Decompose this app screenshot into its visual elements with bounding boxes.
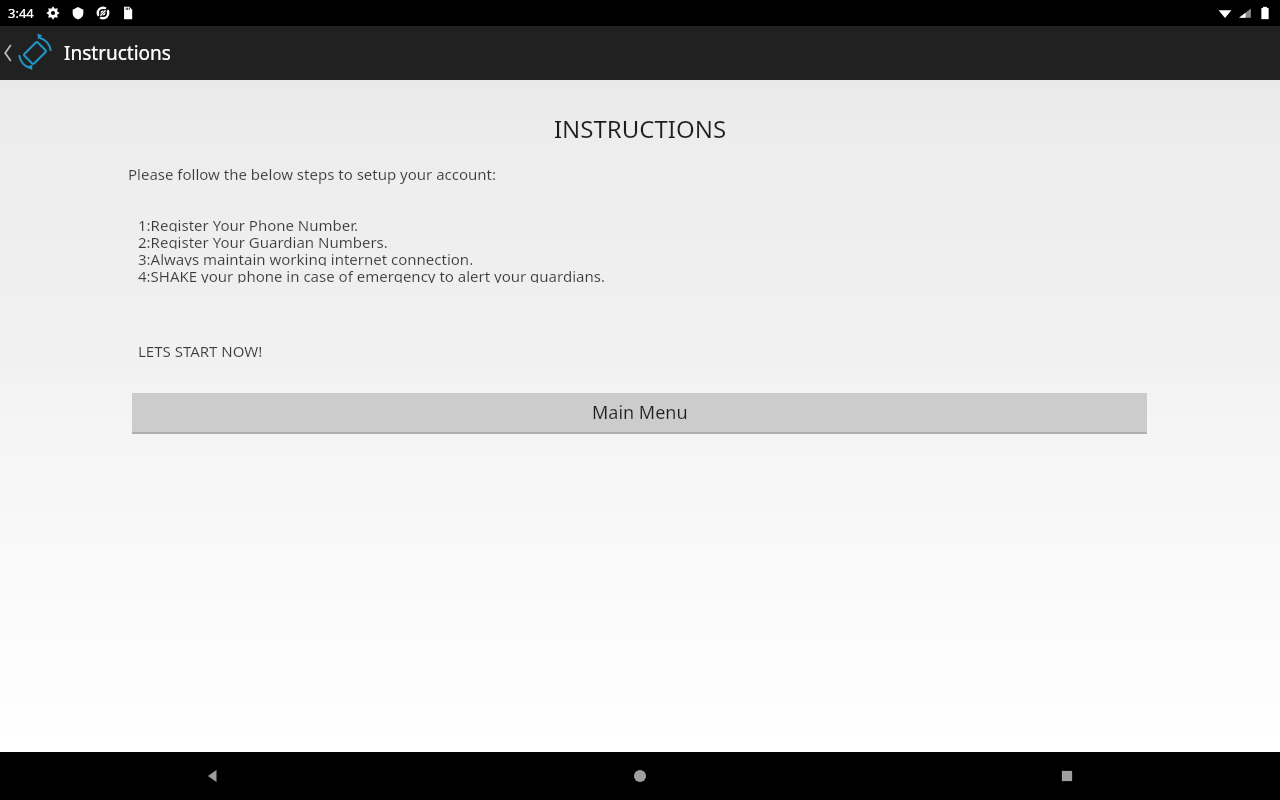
staticText: LETS START NOW! <box>138 341 263 361</box>
button[interactable]: Navigate up <box>0 26 16 80</box>
staticText: 2:Register Your Guardian Numbers. <box>138 232 388 249</box>
button[interactable]: Main Menu <box>132 393 1147 432</box>
staticText: INSTRUCTIONS <box>0 112 1280 145</box>
staticText: Please follow the below steps to setup y… <box>128 164 497 184</box>
button[interactable]: Recent apps <box>853 752 1280 800</box>
staticText: 3:44 <box>8 4 34 22</box>
staticText: Main Menu <box>592 400 688 425</box>
button[interactable]: Instructions <box>16 34 171 72</box>
staticText: 4:SHAKE your phone in case of emergency … <box>138 266 605 283</box>
button[interactable]: Back <box>0 752 426 800</box>
staticText: 1:Register Your Phone Number. <box>138 215 359 232</box>
button[interactable]: Home <box>426 752 853 800</box>
staticText: 3:Always maintain working internet conne… <box>138 249 474 266</box>
staticText: Instructions <box>64 40 171 66</box>
